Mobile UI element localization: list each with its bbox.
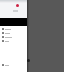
button[interactable] (0, 31, 27, 35)
button[interactable] (0, 39, 27, 43)
button[interactable] (0, 63, 27, 67)
button[interactable] (0, 27, 27, 31)
other: Compose (27, 59, 30, 62)
button[interactable] (0, 35, 27, 39)
button[interactable]: Account (16, 4, 19, 7)
